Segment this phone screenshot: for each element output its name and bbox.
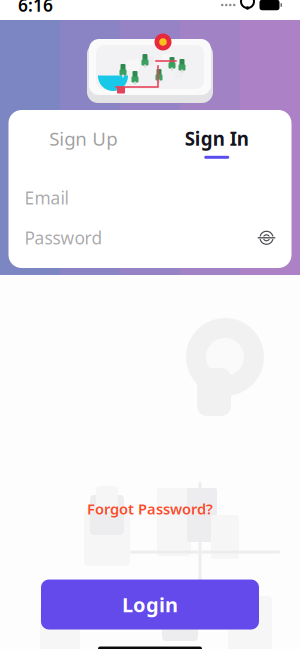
button[interactable]: Login	[41, 579, 259, 629]
staticText: Password	[24, 226, 102, 249]
staticText: Login	[122, 591, 178, 618]
staticText: Sign Up	[49, 126, 117, 151]
staticText: Sign In	[185, 126, 249, 151]
staticText: 6:16	[18, 0, 53, 16]
button[interactable]: Sign Up	[16, 122, 150, 163]
button[interactable]: Password	[8, 225, 291, 251]
button[interactable]: Forgot Password?	[77, 495, 223, 522]
staticText: Email	[24, 186, 68, 209]
staticText: Forgot Password?	[87, 499, 213, 518]
button[interactable]: Email	[8, 185, 291, 211]
button[interactable]: Sign In	[150, 122, 283, 163]
